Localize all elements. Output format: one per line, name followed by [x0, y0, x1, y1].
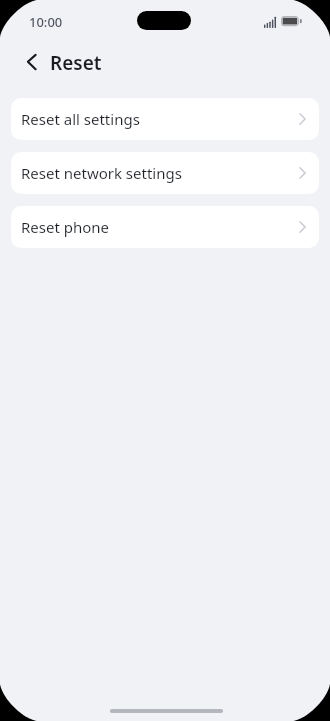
button[interactable]: Back	[16, 48, 46, 76]
button[interactable]: Reset phone	[11, 206, 319, 248]
staticText: 10:00	[29, 13, 63, 31]
staticText: Reset phone	[21, 217, 110, 237]
staticText: Reset network settings	[21, 163, 182, 183]
button[interactable]: Reset all settings	[11, 98, 319, 140]
button[interactable]: Reset network settings	[11, 152, 319, 194]
staticText: Reset all settings	[21, 109, 140, 129]
staticText: Reset	[50, 50, 102, 76]
